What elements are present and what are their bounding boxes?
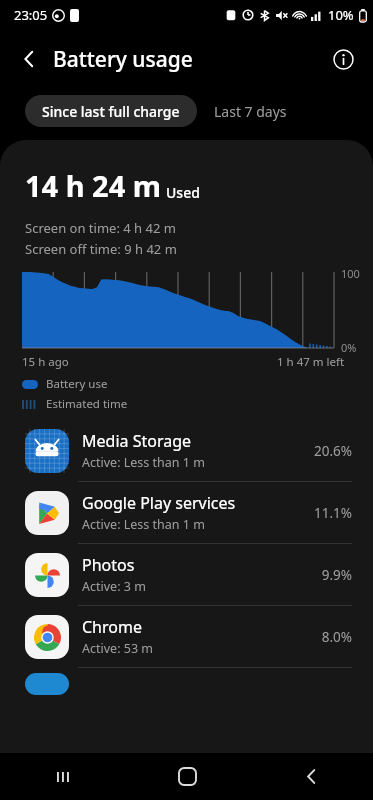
button[interactable]: Back (9, 39, 49, 79)
staticText: Active: 53 m (82, 640, 153, 657)
staticText: Media Storage (82, 430, 192, 452)
staticText: 10% (328, 6, 354, 24)
button[interactable]: Information (323, 39, 363, 79)
button[interactable]: Since last full charge (25, 95, 197, 127)
staticText: Screen on time: 4 h 42 m (25, 219, 176, 237)
staticText: 23:05 (14, 6, 48, 24)
staticText: Chrome (82, 616, 142, 638)
staticText: Google Play services (82, 492, 236, 514)
button[interactable]: Photos (0, 544, 373, 605)
staticText: Battery usage (53, 45, 193, 74)
staticText: 1 h 47 m left (277, 354, 345, 370)
staticText: 14 h 24 m (25, 166, 162, 205)
staticText: 11.1% (313, 504, 352, 522)
staticText: 100 (341, 266, 360, 281)
staticText: 0% (341, 340, 357, 355)
staticText: Used (166, 183, 200, 202)
staticText: Battery use (46, 376, 108, 392)
staticText: Active: Less than 1 m (82, 454, 205, 471)
button[interactable]: Media Storage (0, 420, 373, 481)
button[interactable]: Chrome (0, 606, 373, 667)
button[interactable]: Recent apps (0, 753, 125, 800)
staticText: Estimated time (46, 396, 128, 412)
button[interactable] (0, 673, 373, 695)
staticText: Active: 3 m (82, 578, 146, 595)
button[interactable]: Home (125, 753, 249, 800)
staticText: 15 h ago (22, 354, 69, 370)
staticText: 20.6% (313, 442, 352, 460)
staticText: Photos (82, 554, 135, 576)
staticText: Active: Less than 1 m (82, 516, 205, 533)
staticText: Screen off time: 9 h 42 m (25, 240, 177, 258)
staticText: Since last full charge (42, 102, 180, 121)
button[interactable]: Last 7 days (197, 95, 304, 127)
button[interactable]: Back (249, 753, 373, 800)
staticText: 8.0% (321, 628, 352, 646)
staticText: 9.9% (321, 566, 352, 584)
staticText: Last 7 days (214, 102, 287, 121)
button[interactable]: Google Play services (0, 482, 373, 543)
